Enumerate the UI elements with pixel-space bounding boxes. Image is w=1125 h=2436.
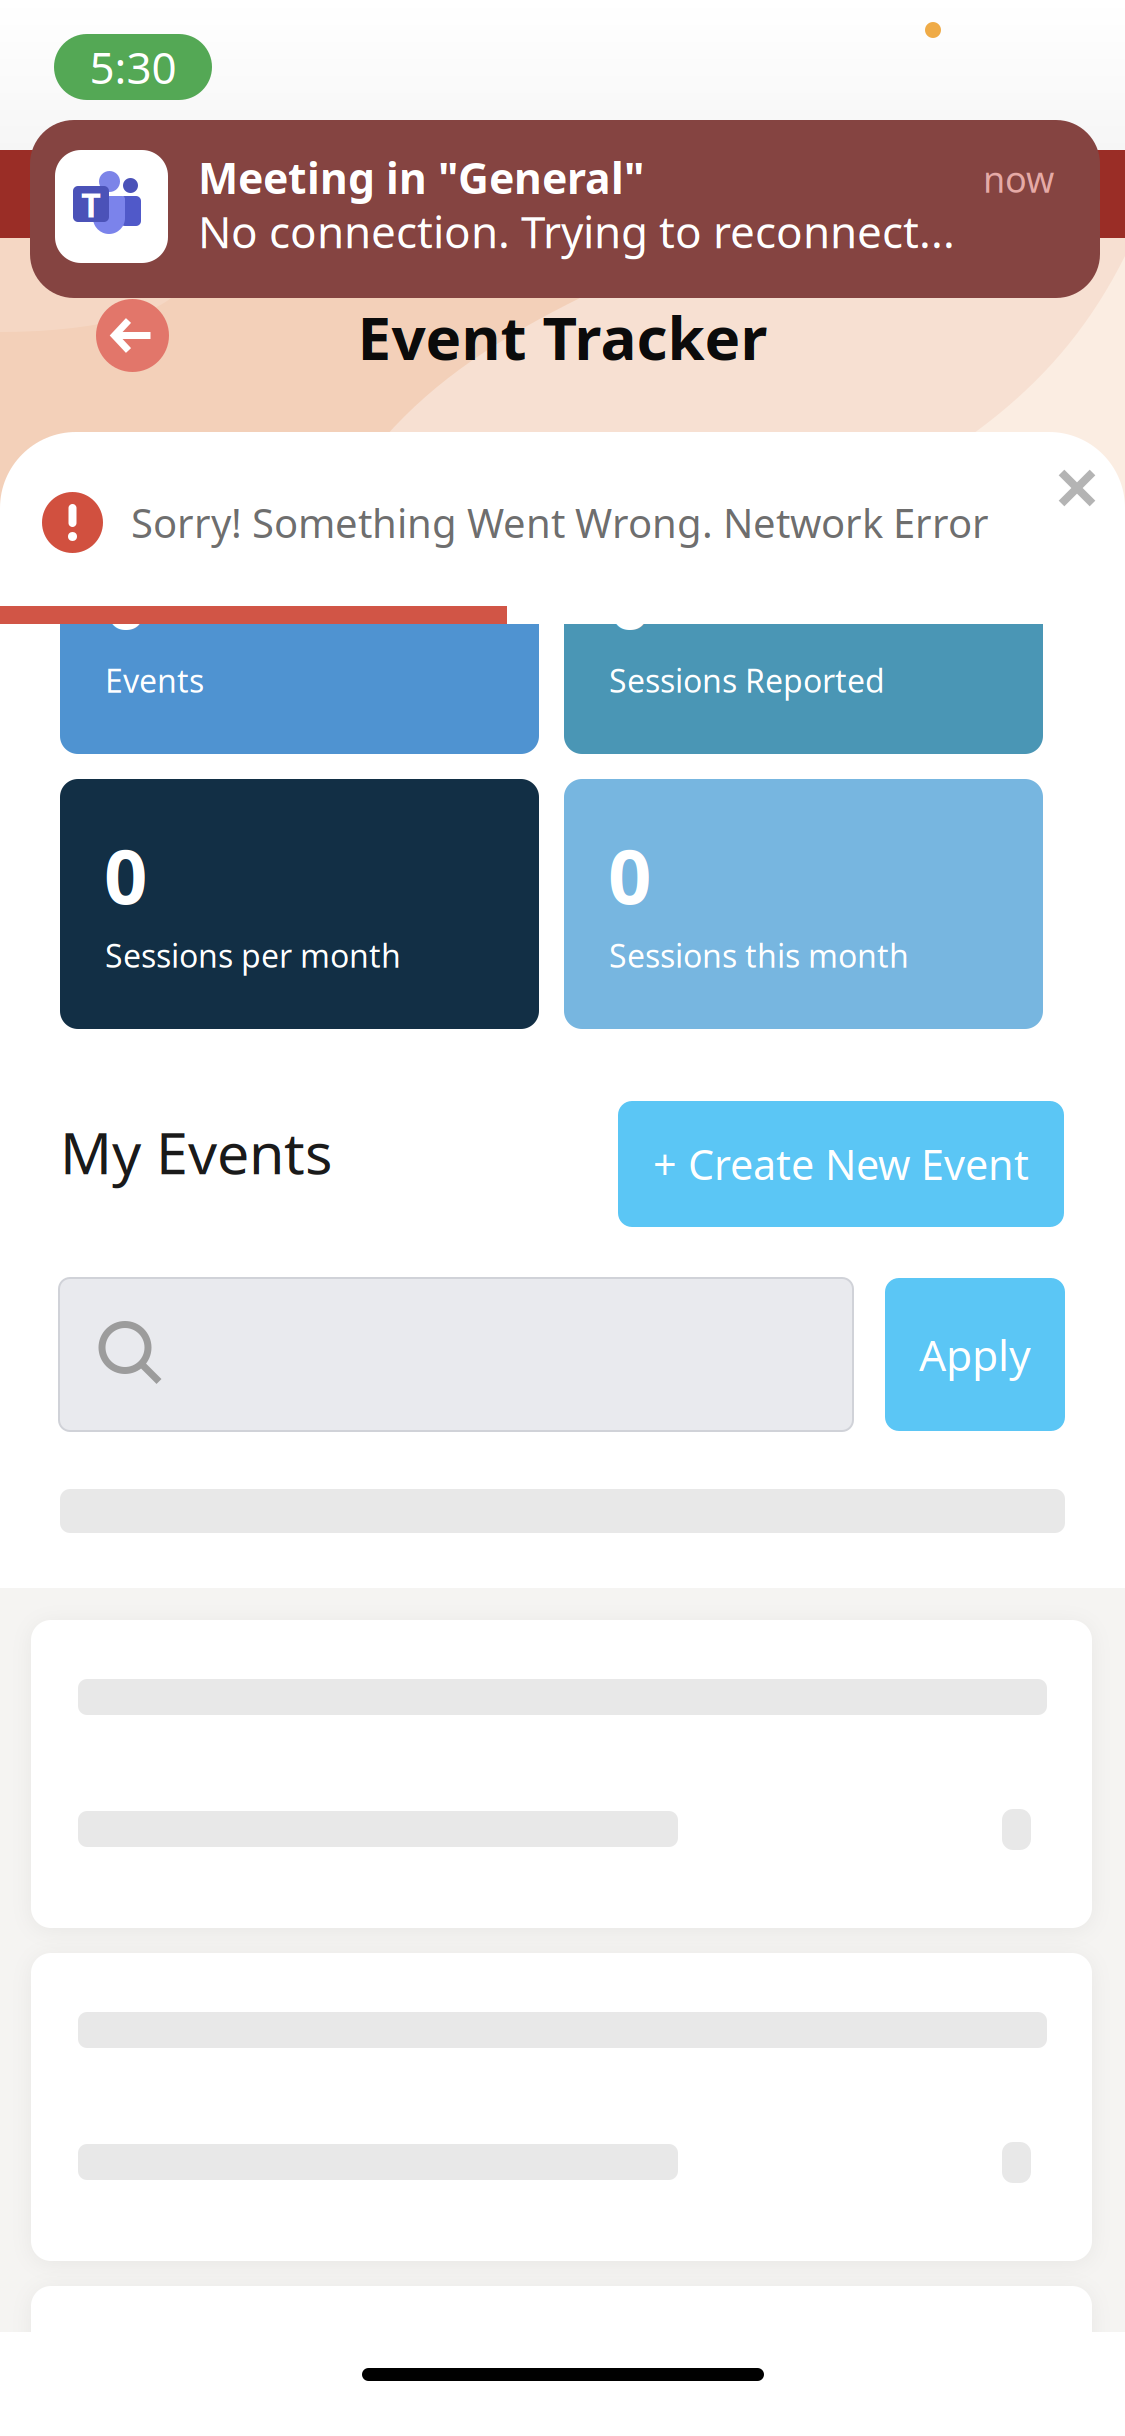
staticText: Event Tracker xyxy=(357,297,767,377)
staticText: No connection. Trying to reconnect... xyxy=(198,202,955,260)
button[interactable]: T xyxy=(30,120,1100,298)
staticText: now xyxy=(983,155,1054,203)
staticText: 0 xyxy=(608,549,651,650)
button[interactable]: Back xyxy=(96,299,169,372)
staticText: Apply xyxy=(919,1326,1031,1383)
staticText: 0 xyxy=(104,824,147,925)
staticText: 5:30 xyxy=(89,38,176,96)
staticText: My Events xyxy=(60,1114,332,1190)
staticText: Sorry! Something Went Wrong. Network Err… xyxy=(131,496,989,549)
staticText: Sessions Reported xyxy=(609,659,885,701)
staticText: Meeting in "General" xyxy=(198,149,644,206)
staticText: T xyxy=(81,181,101,227)
staticText: 0 xyxy=(104,549,147,650)
button[interactable]: Dismiss xyxy=(1046,457,1108,519)
staticText: Sessions this month xyxy=(609,934,909,976)
staticText: + Create New Event xyxy=(653,1137,1029,1191)
staticText: Events xyxy=(105,659,204,701)
staticText: Sessions per month xyxy=(105,934,401,976)
button[interactable]: Apply xyxy=(885,1278,1065,1431)
button[interactable]: + Create New Event xyxy=(618,1101,1064,1227)
staticText: 0 xyxy=(608,824,651,925)
